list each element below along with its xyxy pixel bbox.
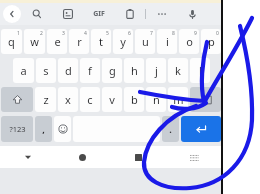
button[interactable]: e: [47, 29, 67, 54]
button[interactable]: ?123: [1, 116, 33, 142]
button[interactable]: Enter: [181, 116, 221, 142]
button[interactable]: k: [168, 58, 188, 83]
staticText: 7: [150, 30, 153, 37]
button[interactable]: Comma: [35, 116, 52, 142]
button[interactable]: p: [201, 29, 221, 54]
staticText: p: [208, 34, 215, 49]
button[interactable]: y: [113, 29, 133, 54]
button[interactable]: o: [179, 29, 199, 54]
staticText: GIF: [93, 9, 105, 19]
button[interactable]: a: [13, 58, 34, 83]
button[interactable]: x: [58, 87, 78, 112]
button[interactable]: Period: [162, 116, 179, 142]
button[interactable]: Space: [73, 116, 160, 142]
button[interactable]: Shift: [1, 87, 33, 112]
staticText: s: [43, 63, 49, 78]
button[interactable]: g: [102, 58, 122, 83]
staticText: k: [175, 63, 181, 78]
button[interactable]: v: [102, 87, 122, 112]
button[interactable]: d: [58, 58, 78, 83]
staticText: f: [88, 63, 92, 78]
button[interactable]: Voice input: [177, 3, 208, 25]
button[interactable]: Back: [0, 146, 55, 168]
staticText: q: [8, 34, 15, 49]
staticText: i: [166, 34, 169, 49]
button[interactable]: c: [80, 87, 100, 112]
button[interactable]: f: [80, 58, 100, 83]
staticText: w: [30, 34, 39, 49]
staticText: 3: [62, 30, 65, 37]
button[interactable]: Switch keyboard: [166, 146, 222, 168]
staticText: d: [65, 63, 72, 78]
button[interactable]: m: [168, 87, 188, 112]
button[interactable]: q: [1, 29, 22, 54]
staticText: c: [87, 92, 93, 107]
button[interactable]: n: [146, 87, 166, 112]
staticText: 5: [106, 30, 109, 37]
staticText: n: [153, 92, 160, 107]
staticText: 6: [128, 30, 131, 37]
staticText: y: [120, 34, 126, 49]
staticText: r: [77, 34, 82, 49]
button[interactable]: t: [91, 29, 111, 54]
button[interactable]: z: [35, 87, 56, 112]
button[interactable]: Home: [55, 146, 110, 168]
button[interactable]: u: [135, 29, 155, 54]
button[interactable]: Recents: [110, 146, 166, 168]
button[interactable]: r: [69, 29, 89, 54]
button[interactable]: w: [24, 29, 45, 54]
staticText: u: [142, 34, 149, 49]
staticText: x: [65, 92, 71, 107]
staticText: e: [54, 34, 61, 49]
staticText: l: [199, 63, 202, 78]
button[interactable]: Stickers: [52, 3, 83, 25]
staticText: ,: [42, 123, 45, 135]
button[interactable]: s: [36, 58, 56, 83]
staticText: 2: [40, 30, 43, 37]
staticText: 0: [216, 30, 219, 37]
button[interactable]: i: [157, 29, 177, 54]
staticText: 9: [194, 30, 197, 37]
staticText: h: [131, 63, 138, 78]
button[interactable]: Emoji: [54, 116, 71, 142]
button[interactable]: More options: [146, 3, 177, 25]
staticText: a: [20, 63, 27, 78]
staticText: j: [155, 63, 158, 78]
button[interactable]: h: [124, 58, 144, 83]
staticText: t: [99, 34, 103, 49]
button[interactable]: Clipboard: [114, 3, 145, 25]
button[interactable]: GIF: [83, 3, 114, 25]
button[interactable]: Search: [21, 3, 52, 25]
button[interactable]: Backspace: [190, 87, 221, 112]
staticText: ?123: [9, 124, 26, 134]
staticText: 8: [172, 30, 175, 37]
staticText: m: [173, 92, 184, 107]
button[interactable]: Back: [3, 5, 21, 23]
button[interactable]: b: [124, 87, 144, 112]
staticText: z: [43, 92, 49, 107]
staticText: o: [186, 34, 193, 49]
staticText: g: [109, 63, 116, 78]
staticText: 1: [17, 30, 20, 37]
button[interactable]: j: [146, 58, 166, 83]
staticText: .: [169, 123, 172, 135]
staticText: 4: [84, 30, 87, 37]
staticText: b: [131, 92, 138, 107]
staticText: v: [109, 92, 115, 107]
button[interactable]: l: [190, 58, 210, 83]
